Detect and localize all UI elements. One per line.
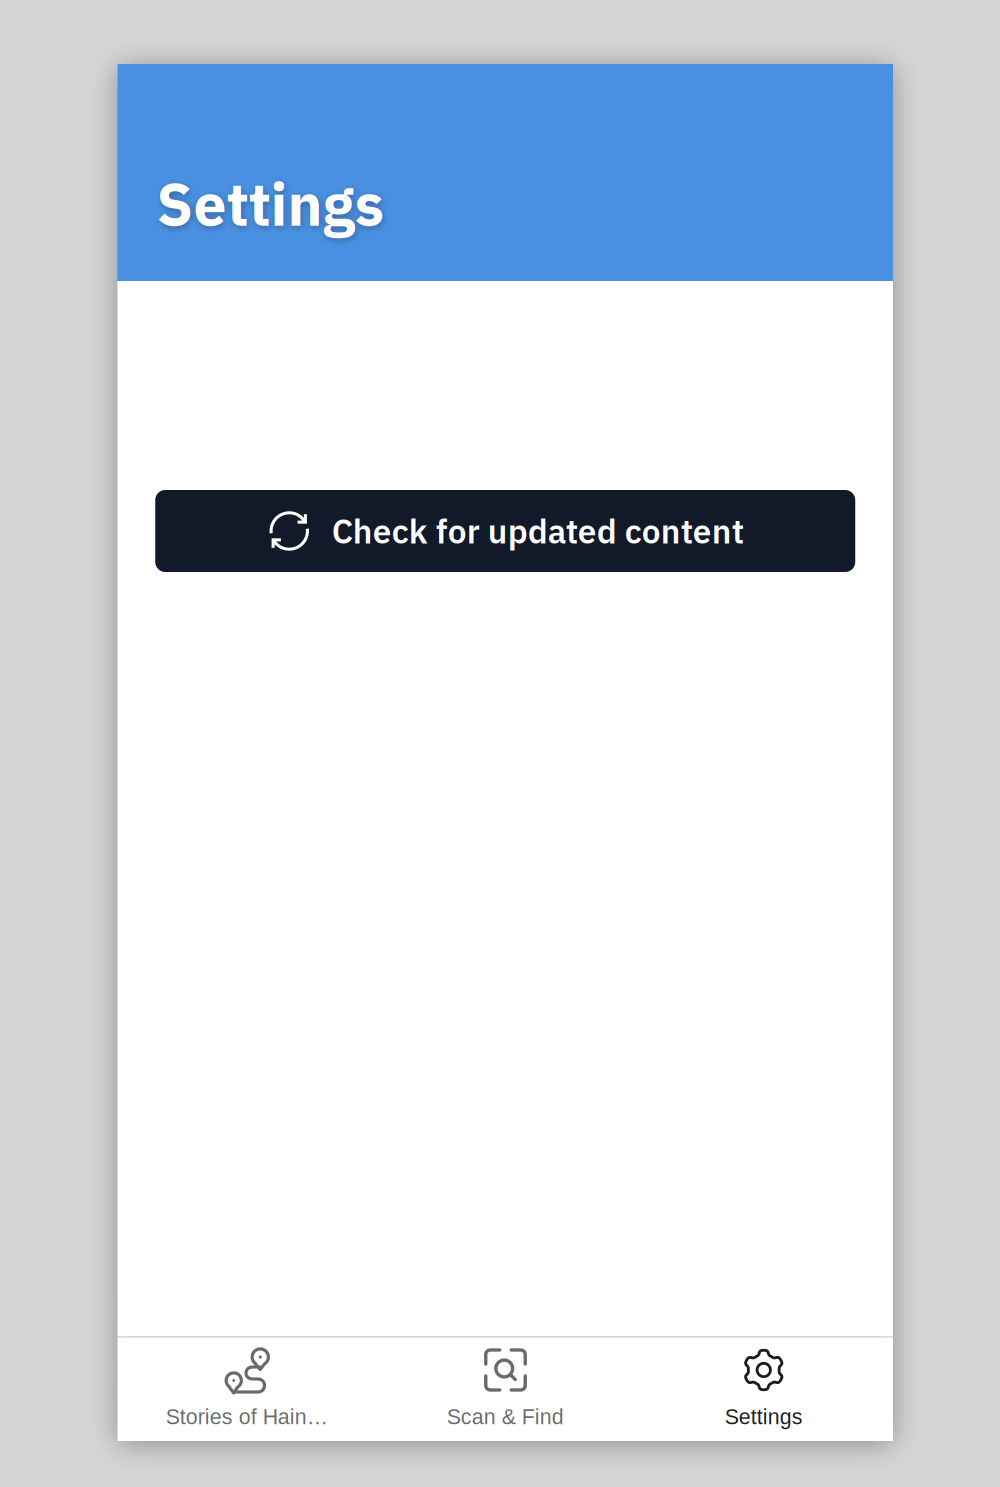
staticText: Stories of Hain… bbox=[166, 1405, 328, 1429]
staticText: Check for updated content bbox=[332, 509, 744, 553]
staticText: Scan & Find bbox=[447, 1405, 564, 1429]
button[interactable]: Stories of Hain… bbox=[117, 1338, 376, 1441]
button[interactable]: Check for updated content bbox=[155, 490, 855, 572]
button[interactable]: Settings bbox=[634, 1338, 893, 1441]
staticText: Settings bbox=[725, 1405, 803, 1429]
button[interactable]: Scan & Find bbox=[376, 1338, 634, 1441]
staticText: Settings bbox=[156, 166, 384, 242]
